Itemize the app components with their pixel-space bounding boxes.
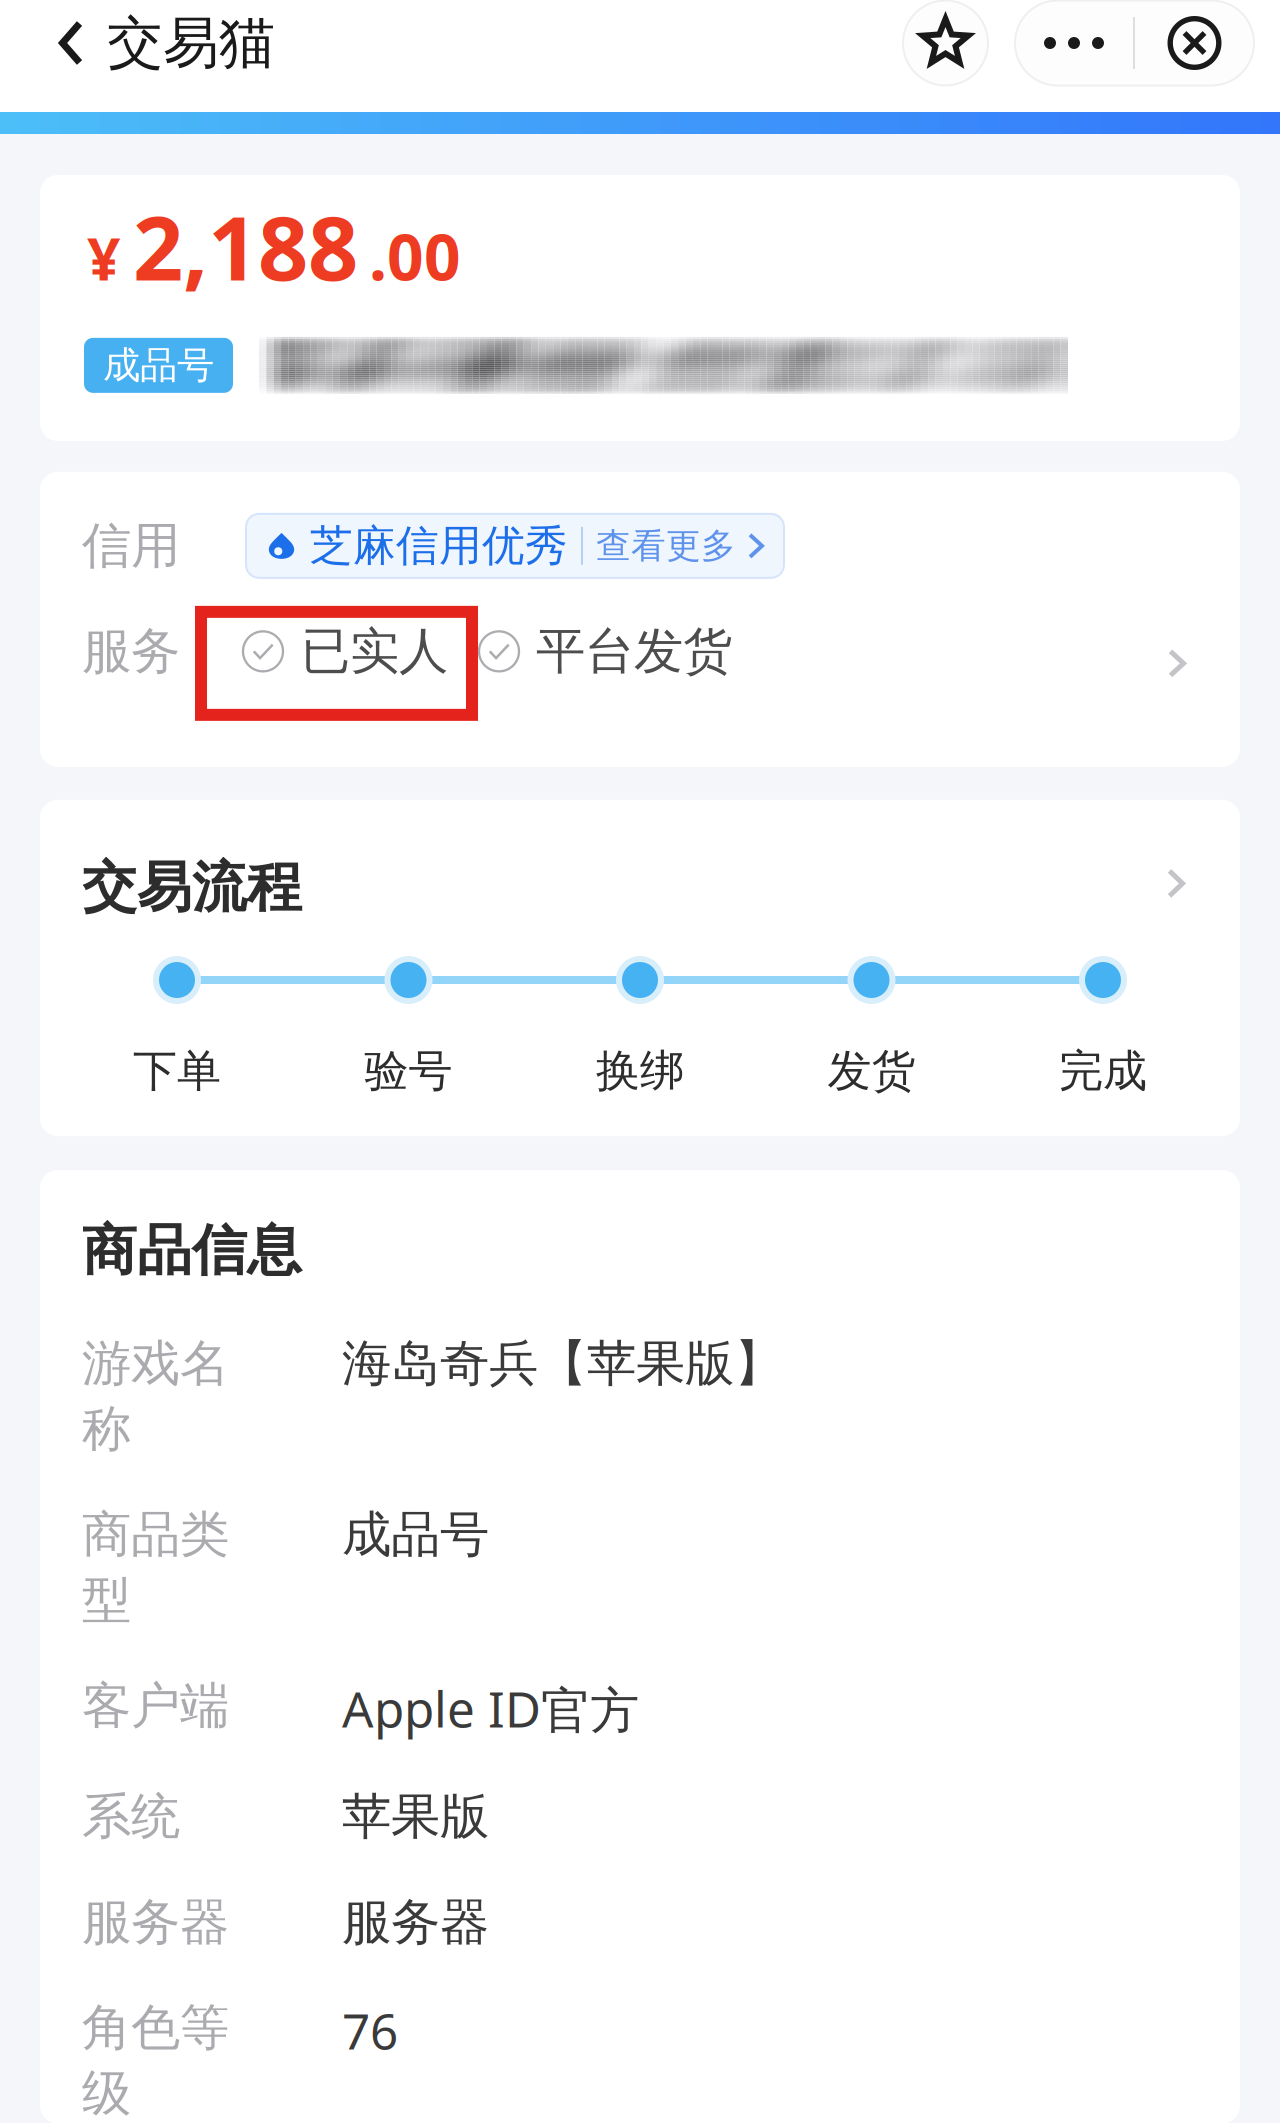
staticText: 成品号: [103, 342, 214, 388]
staticText: 服务器: [82, 1892, 229, 1952]
staticText: 服务器: [342, 1892, 489, 1952]
staticText: 2,188: [133, 188, 358, 305]
staticText: 客户端: [82, 1676, 229, 1736]
button[interactable]: 芝麻信用优秀: [246, 514, 784, 578]
staticText: 已实人: [301, 621, 448, 682]
button[interactable]: 返回: [0, 0, 297, 86]
button[interactable]: 服务: [40, 600, 1240, 703]
staticText: 交易猫: [107, 9, 275, 77]
staticText: .00: [369, 213, 461, 298]
staticText: Apple ID官方: [342, 1676, 639, 1741]
staticText: 平台发货: [536, 621, 732, 682]
staticText: 服务: [82, 621, 180, 682]
staticText: 商品类型: [82, 1504, 229, 1631]
staticText: 信用: [82, 516, 180, 576]
staticText: 角色等级: [82, 1997, 229, 2123]
staticText: 海岛奇兵【苹果版】: [342, 1333, 783, 1394]
staticText: 交易流程: [82, 854, 302, 921]
button[interactable]: 关闭: [1135, 0, 1254, 85]
staticText: 76: [342, 1997, 398, 2063]
staticText: 商品信息: [82, 1217, 302, 1284]
staticText: 发货: [827, 1044, 915, 1098]
staticText: 芝麻信用优秀: [310, 520, 568, 572]
staticText: 系统: [82, 1786, 180, 1847]
staticText: 游戏名称: [82, 1333, 229, 1459]
button[interactable]: 交易流程: [40, 854, 1240, 921]
button[interactable]: 更多: [1015, 0, 1133, 85]
staticText: 完成: [1059, 1044, 1147, 1098]
staticText: 成品号: [342, 1504, 489, 1565]
staticText: 换绑: [596, 1044, 684, 1098]
staticText: ¥: [87, 219, 121, 297]
button[interactable]: 收藏: [903, 0, 988, 85]
staticText: 验号: [364, 1044, 452, 1098]
staticText: 查看更多: [596, 525, 736, 567]
staticText: 下单: [133, 1044, 221, 1098]
staticText: 苹果版: [342, 1786, 489, 1847]
